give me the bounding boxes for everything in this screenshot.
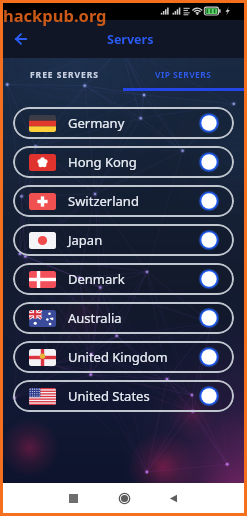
staticText: Switzerland xyxy=(68,192,139,210)
button[interactable]: Switzerland xyxy=(13,185,234,217)
button[interactable]: Hong Kong xyxy=(13,146,234,178)
button[interactable]: Back xyxy=(162,487,184,509)
staticText: United Kingdom xyxy=(68,348,168,366)
button[interactable]: Japan xyxy=(13,224,234,256)
button[interactable]: Australia xyxy=(13,302,234,334)
staticText: United States xyxy=(68,387,150,405)
staticText: Japan xyxy=(68,231,103,249)
button[interactable]: Home xyxy=(113,487,135,509)
staticText: Germany xyxy=(68,114,125,132)
button[interactable]: VIP SERVERS xyxy=(123,58,247,91)
button[interactable]: Denmark xyxy=(13,263,234,295)
staticText: Servers xyxy=(107,31,154,48)
staticText: Hong Kong xyxy=(68,153,137,171)
staticText: Australia xyxy=(68,309,122,327)
button[interactable]: Recent apps xyxy=(62,487,84,509)
staticText: Denmark xyxy=(68,270,125,288)
button[interactable]: Back xyxy=(7,25,35,53)
staticText: VIP SERVERS xyxy=(155,69,212,81)
button[interactable]: United States xyxy=(13,380,234,412)
staticText: FREE SERVERS xyxy=(30,69,99,81)
button[interactable]: FREE SERVERS xyxy=(0,58,123,91)
button[interactable]: Germany xyxy=(13,107,234,139)
button[interactable]: United Kingdom xyxy=(13,341,234,373)
staticText: hackpub.org xyxy=(3,4,107,26)
